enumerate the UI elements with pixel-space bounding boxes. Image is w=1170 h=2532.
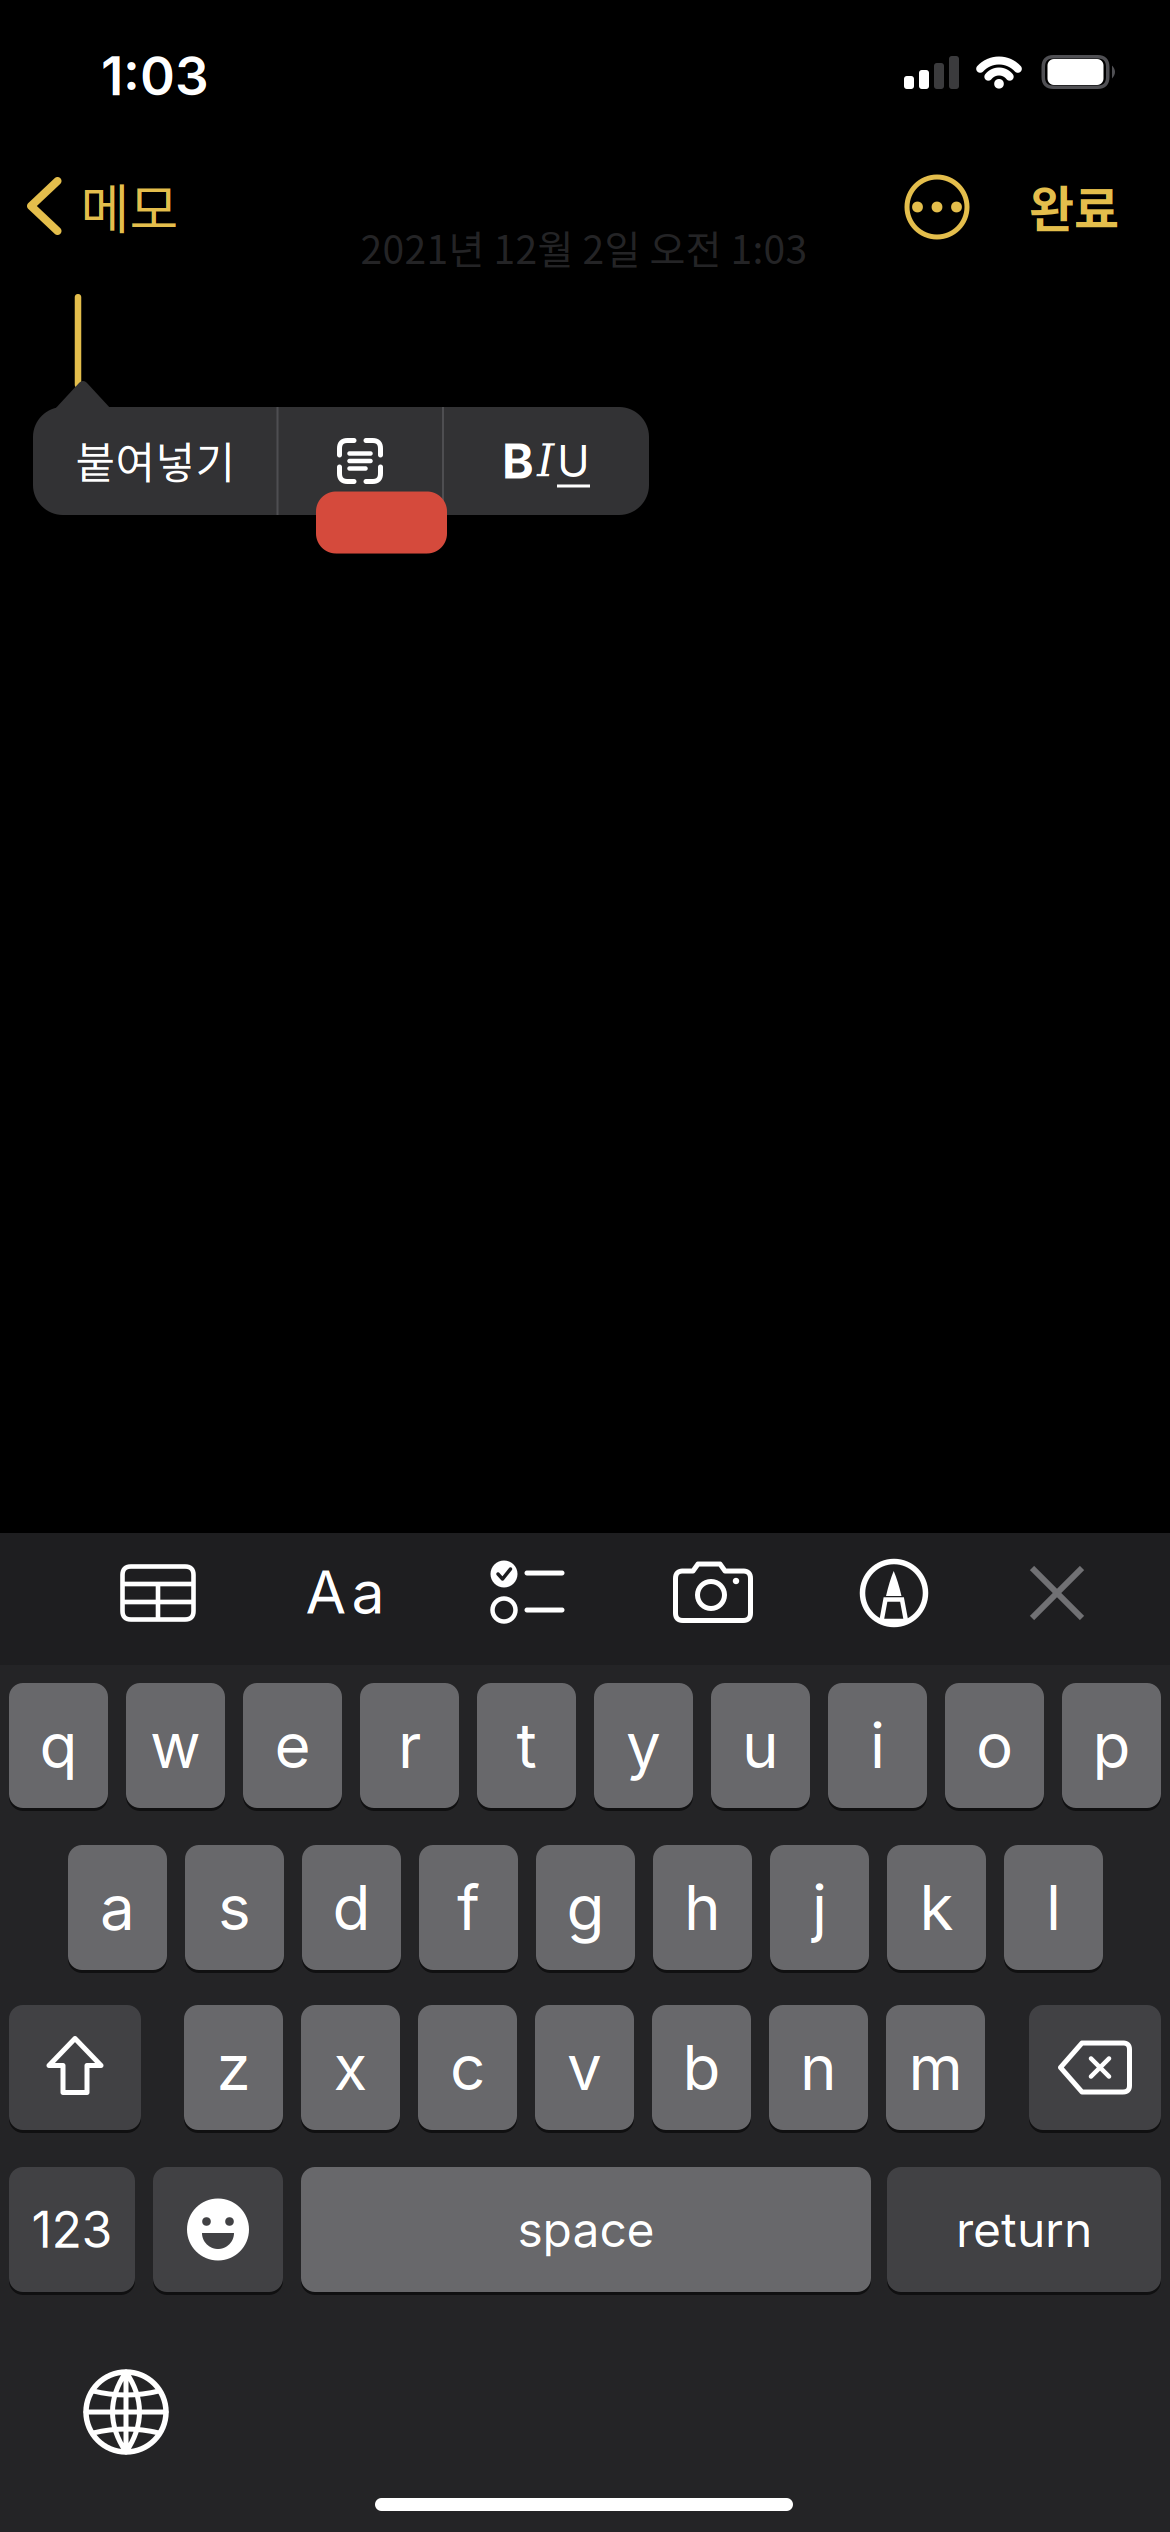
staticText: i <box>870 1708 885 1783</box>
staticText: g <box>566 1870 604 1945</box>
button[interactable]: Checklist <box>488 1560 566 1626</box>
staticText: y <box>626 1708 661 1783</box>
button[interactable]: d <box>302 1845 401 1970</box>
button[interactable]: 123 <box>9 2167 135 2292</box>
button[interactable]: Dismiss Keyboard <box>1028 1564 1086 1622</box>
button[interactable]: Delete <box>1029 2005 1161 2130</box>
staticText: return <box>956 2200 1092 2259</box>
button[interactable]: k <box>887 1845 986 1970</box>
button[interactable]: n <box>769 2005 868 2130</box>
button[interactable]: o <box>945 1683 1044 1808</box>
staticText: s <box>218 1870 251 1945</box>
staticText: d <box>332 1870 370 1945</box>
staticText: c <box>450 2030 485 2105</box>
button[interactable]: Next Keyboard <box>82 2368 170 2456</box>
staticText: 메모 <box>80 168 178 244</box>
staticText: l <box>1046 1870 1061 1945</box>
button[interactable]: s <box>185 1845 284 1970</box>
button[interactable]: f <box>419 1845 518 1970</box>
staticText: u <box>742 1708 779 1783</box>
button[interactable]: Emoji <box>153 2167 283 2292</box>
button[interactable]: q <box>9 1683 108 1808</box>
button[interactable]: i <box>828 1683 927 1808</box>
button[interactable]: t <box>477 1683 576 1808</box>
button[interactable]: m <box>886 2005 985 2130</box>
staticText: 1:03 <box>101 44 209 108</box>
button[interactable]: u <box>711 1683 810 1808</box>
staticText: 완료 <box>1029 170 1119 241</box>
staticText: e <box>274 1708 310 1783</box>
button[interactable]: c <box>418 2005 517 2130</box>
button[interactable]: p <box>1062 1683 1161 1808</box>
staticText: 123 <box>31 2199 112 2260</box>
staticText: U <box>557 434 590 488</box>
staticText: f <box>457 1870 480 1945</box>
button[interactable]: Camera <box>673 1561 753 1623</box>
staticText: h <box>684 1870 721 1945</box>
staticText: n <box>800 2030 837 2105</box>
button[interactable]: 붙여넣기 <box>34 406 277 514</box>
button[interactable]: a <box>68 1845 167 1970</box>
button[interactable]: r <box>360 1683 459 1808</box>
staticText: x <box>333 2030 367 2105</box>
staticText: r <box>398 1708 421 1783</box>
button[interactable]: y <box>594 1683 693 1808</box>
staticText: 2021년 12월 2일 오전 1:03 <box>360 219 807 275</box>
button[interactable]: Markup <box>859 1558 929 1628</box>
staticText: I <box>537 435 554 487</box>
button[interactable]: v <box>535 2005 634 2130</box>
button[interactable]: w <box>126 1683 225 1808</box>
button[interactable]: g <box>536 1845 635 1970</box>
button[interactable]: Shift <box>9 2005 141 2130</box>
button[interactable]: x <box>301 2005 400 2130</box>
button[interactable]: h <box>653 1845 752 1970</box>
staticText: v <box>567 2030 602 2105</box>
staticText: t <box>516 1708 536 1783</box>
staticText: k <box>919 1870 953 1945</box>
staticText: Aa <box>305 1556 384 1628</box>
button[interactable]: 완료 <box>1029 170 1119 241</box>
staticText: q <box>39 1708 77 1783</box>
staticText: m <box>908 2030 962 2105</box>
staticText: b <box>682 2030 720 2105</box>
staticText: 붙여넣기 <box>75 429 235 491</box>
staticText: space <box>517 2200 654 2259</box>
staticText: o <box>976 1708 1013 1783</box>
button[interactable]: Scan Text <box>278 407 441 515</box>
button[interactable]: More <box>903 173 971 241</box>
button[interactable]: b <box>652 2005 751 2130</box>
button[interactable]: Format <box>444 407 648 515</box>
button[interactable]: Back <box>25 168 178 244</box>
button[interactable]: e <box>243 1683 342 1808</box>
staticText: w <box>150 1708 201 1783</box>
button[interactable]: Insert Table <box>120 1564 196 1622</box>
staticText: z <box>216 2030 250 2105</box>
button[interactable]: return <box>887 2167 1161 2292</box>
button[interactable]: z <box>184 2005 283 2130</box>
button[interactable]: space <box>301 2167 871 2292</box>
button[interactable]: l <box>1004 1845 1103 1970</box>
button[interactable]: j <box>770 1845 869 1970</box>
staticText: p <box>1092 1708 1130 1783</box>
staticText: B <box>502 432 534 490</box>
staticText: j <box>812 1870 827 1945</box>
staticText: a <box>100 1870 135 1945</box>
button[interactable]: Format Text <box>305 1556 384 1628</box>
